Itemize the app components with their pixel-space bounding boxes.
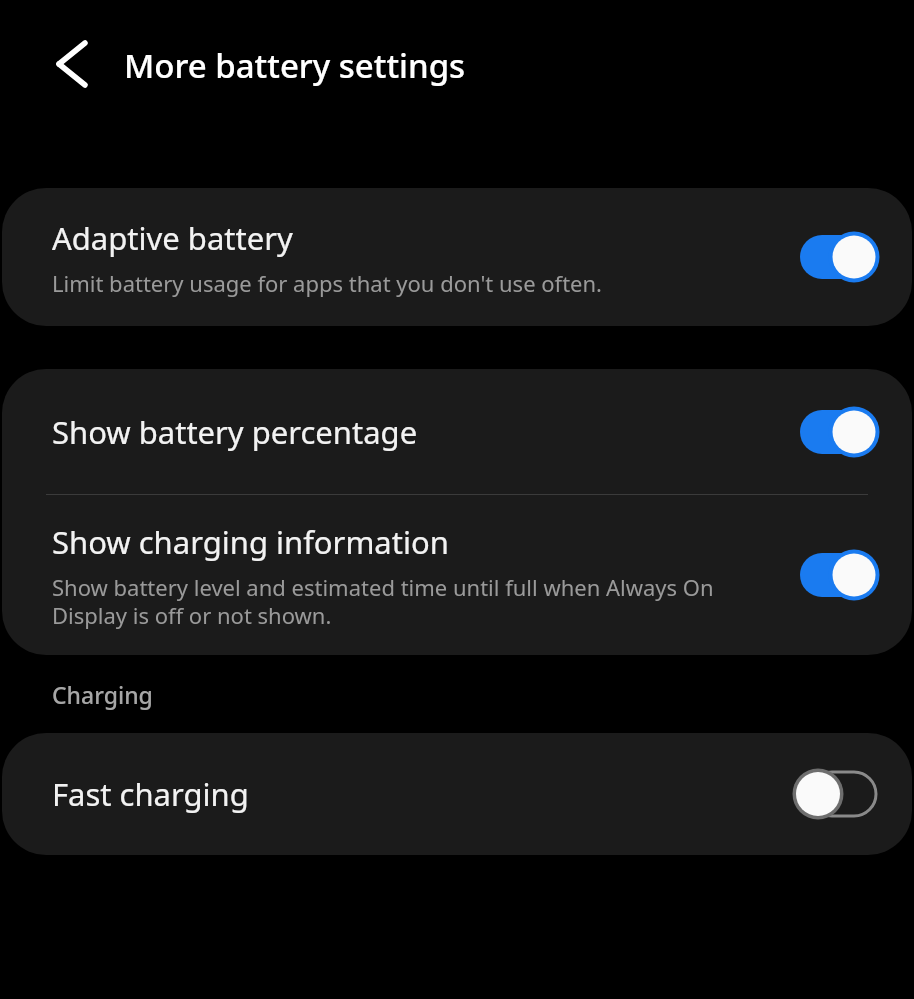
staticText: Adaptive battery xyxy=(52,217,293,259)
button[interactable]: Show battery percentage toggle xyxy=(796,403,892,461)
staticText: Show charging information xyxy=(52,521,449,563)
staticText: Show battery percentage xyxy=(52,411,418,453)
staticText: Charging xyxy=(52,679,153,710)
button[interactable]: Show battery percentage xyxy=(2,369,912,494)
button[interactable]: Adaptive battery toggle xyxy=(796,228,892,286)
staticText: Fast charging xyxy=(52,773,249,815)
button[interactable]: Adaptive battery xyxy=(2,188,912,326)
staticText: Show battery level and estimated time un… xyxy=(52,572,788,630)
button[interactable]: Show charging information xyxy=(2,495,912,655)
staticText: Limit battery usage for apps that you do… xyxy=(52,268,602,298)
button[interactable]: Fast charging xyxy=(2,733,912,855)
button[interactable]: Show charging information toggle xyxy=(796,546,892,604)
button[interactable]: Back xyxy=(42,36,98,92)
button[interactable]: Fast charging toggle xyxy=(796,765,892,823)
staticText: More battery settings xyxy=(124,43,466,88)
